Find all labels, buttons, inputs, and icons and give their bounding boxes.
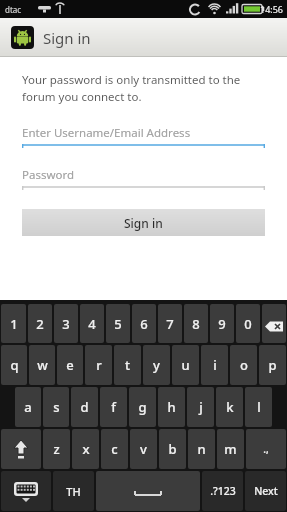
staticText: 1	[10, 315, 18, 333]
button[interactable]: 7	[158, 304, 182, 343]
button[interactable]: n	[188, 429, 215, 469]
staticText: l	[257, 398, 261, 416]
button[interactable]: 6	[132, 304, 156, 343]
button[interactable]: p	[259, 345, 286, 385]
button[interactable]: Sign in	[22, 209, 265, 236]
button[interactable]: 9	[210, 304, 234, 343]
staticText: Your password is only transmitted to the…	[22, 72, 241, 104]
staticText: 7	[166, 315, 174, 333]
staticText: m	[224, 440, 237, 458]
button[interactable]: u	[172, 345, 199, 385]
button[interactable]: k	[216, 387, 243, 427]
button[interactable]: q	[1, 345, 27, 385]
button[interactable]: h	[158, 387, 185, 427]
button[interactable]: 0	[236, 304, 260, 343]
staticText: 3	[62, 315, 70, 333]
button[interactable]: o	[230, 345, 257, 385]
button[interactable]: 3	[54, 304, 78, 343]
staticText: o	[240, 356, 248, 374]
button[interactable]: e	[57, 345, 83, 385]
button[interactable]: 4	[80, 304, 104, 343]
staticText: Password	[22, 167, 75, 183]
staticText: .?123	[210, 484, 236, 498]
staticText: 6	[140, 315, 148, 333]
staticText: d	[80, 398, 89, 416]
staticText: f	[111, 398, 116, 416]
button[interactable]: Shift	[1, 429, 41, 469]
staticText: 8	[192, 315, 200, 333]
button[interactable]: j	[187, 387, 214, 427]
button[interactable]: d	[71, 387, 98, 427]
button[interactable]: Password	[22, 164, 265, 191]
button[interactable]: r	[85, 345, 112, 385]
staticText: x	[82, 440, 90, 458]
staticText: w	[37, 356, 48, 374]
button[interactable]: Delete	[262, 304, 286, 343]
button[interactable]: t	[114, 345, 141, 385]
staticText: Enter Username/Email Address	[22, 125, 191, 141]
staticText: g	[138, 398, 147, 416]
staticText: Sign in	[124, 215, 163, 231]
staticText: y	[153, 356, 160, 374]
staticText: Sign in	[43, 28, 91, 48]
staticText: 2	[36, 315, 44, 333]
button[interactable]: Enter Username/Email Address	[22, 122, 265, 149]
button[interactable]: 5	[106, 304, 130, 343]
staticText: 14:56	[260, 3, 284, 15]
staticText: z	[53, 440, 60, 458]
button[interactable]: v	[130, 429, 157, 469]
staticText: c	[111, 440, 118, 458]
staticText: k	[226, 398, 234, 416]
button[interactable]: g	[129, 387, 156, 427]
button[interactable]: f	[100, 387, 127, 427]
staticText: q	[10, 356, 19, 374]
button[interactable]: Next	[245, 471, 286, 511]
button[interactable]: TH	[53, 471, 94, 511]
button[interactable]: z	[43, 429, 70, 469]
staticText: 0	[244, 315, 252, 333]
button[interactable]: 8	[184, 304, 208, 343]
button[interactable]: .,	[246, 429, 286, 469]
staticText: 4	[88, 315, 96, 333]
button[interactable]: c	[101, 429, 128, 469]
staticText: a	[24, 398, 32, 416]
button[interactable]: 2	[28, 304, 52, 343]
staticText: n	[197, 440, 206, 458]
button[interactable]: 1	[1, 304, 26, 343]
button[interactable]: Space	[96, 471, 200, 511]
staticText: 5	[114, 315, 122, 333]
staticText: b	[168, 440, 177, 458]
staticText: Next	[254, 484, 278, 498]
staticText: v	[140, 440, 147, 458]
button[interactable]: l	[245, 387, 272, 427]
button[interactable]: App icon	[11, 26, 34, 49]
staticText: 9	[218, 315, 226, 333]
staticText: TH	[66, 484, 81, 499]
staticText: dtac	[5, 4, 22, 15]
staticText: h	[167, 398, 176, 416]
staticText: p	[268, 356, 277, 374]
staticText: j	[199, 398, 203, 416]
staticText: r	[96, 356, 102, 374]
button[interactable]: Hide keyboard	[1, 471, 51, 511]
staticText: s	[53, 398, 60, 416]
staticText: e	[66, 356, 74, 374]
button[interactable]: m	[217, 429, 244, 469]
button[interactable]: w	[29, 345, 55, 385]
button[interactable]: s	[43, 387, 69, 427]
staticText: .,	[263, 442, 269, 456]
button[interactable]: b	[159, 429, 186, 469]
button[interactable]: x	[72, 429, 99, 469]
staticText: t	[125, 356, 130, 374]
button[interactable]: a	[15, 387, 41, 427]
button[interactable]: i	[201, 345, 228, 385]
staticText: i	[213, 356, 217, 374]
button[interactable]: y	[143, 345, 170, 385]
staticText: u	[181, 356, 190, 374]
button[interactable]: .?123	[202, 471, 243, 511]
